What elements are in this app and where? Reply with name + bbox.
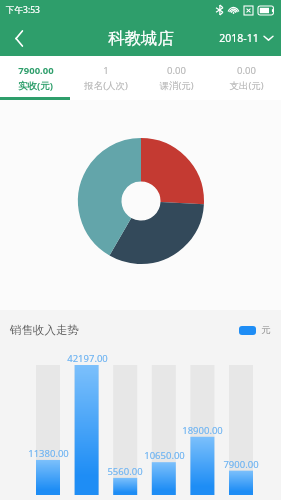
staticText: 0.00 bbox=[167, 64, 186, 77]
staticText: 7900.00 bbox=[18, 64, 54, 77]
staticText: 7900.00 bbox=[223, 458, 259, 471]
staticText: 1 bbox=[103, 64, 109, 77]
staticText: 科教城店 bbox=[108, 28, 174, 49]
staticText: 0.00 bbox=[237, 64, 256, 77]
staticText: 下午3:53 bbox=[6, 4, 40, 16]
staticText: 支出(元) bbox=[229, 79, 264, 92]
staticText: 18900.00 bbox=[182, 424, 223, 437]
staticText: 5560.00 bbox=[107, 465, 143, 478]
staticText: 2018-11 bbox=[219, 31, 259, 45]
staticText: 元 bbox=[261, 324, 271, 336]
staticText: 42197.00 bbox=[67, 352, 108, 365]
button[interactable]: 7900.00 bbox=[0, 56, 71, 100]
button[interactable]: Back bbox=[0, 20, 38, 56]
button[interactable]: 0.00 bbox=[141, 56, 211, 100]
staticText: 课消(元) bbox=[159, 79, 194, 92]
staticText: 销售收入走势 bbox=[10, 323, 79, 337]
button[interactable]: 0.00 bbox=[211, 56, 281, 100]
staticText: 报名(人次) bbox=[84, 79, 128, 92]
staticText: 实收(元) bbox=[18, 79, 53, 92]
button[interactable]: 1 bbox=[71, 56, 141, 100]
button[interactable]: 2018-11 bbox=[219, 31, 273, 45]
staticText: 10650.00 bbox=[144, 449, 185, 462]
staticText: 11380.00 bbox=[28, 447, 69, 460]
